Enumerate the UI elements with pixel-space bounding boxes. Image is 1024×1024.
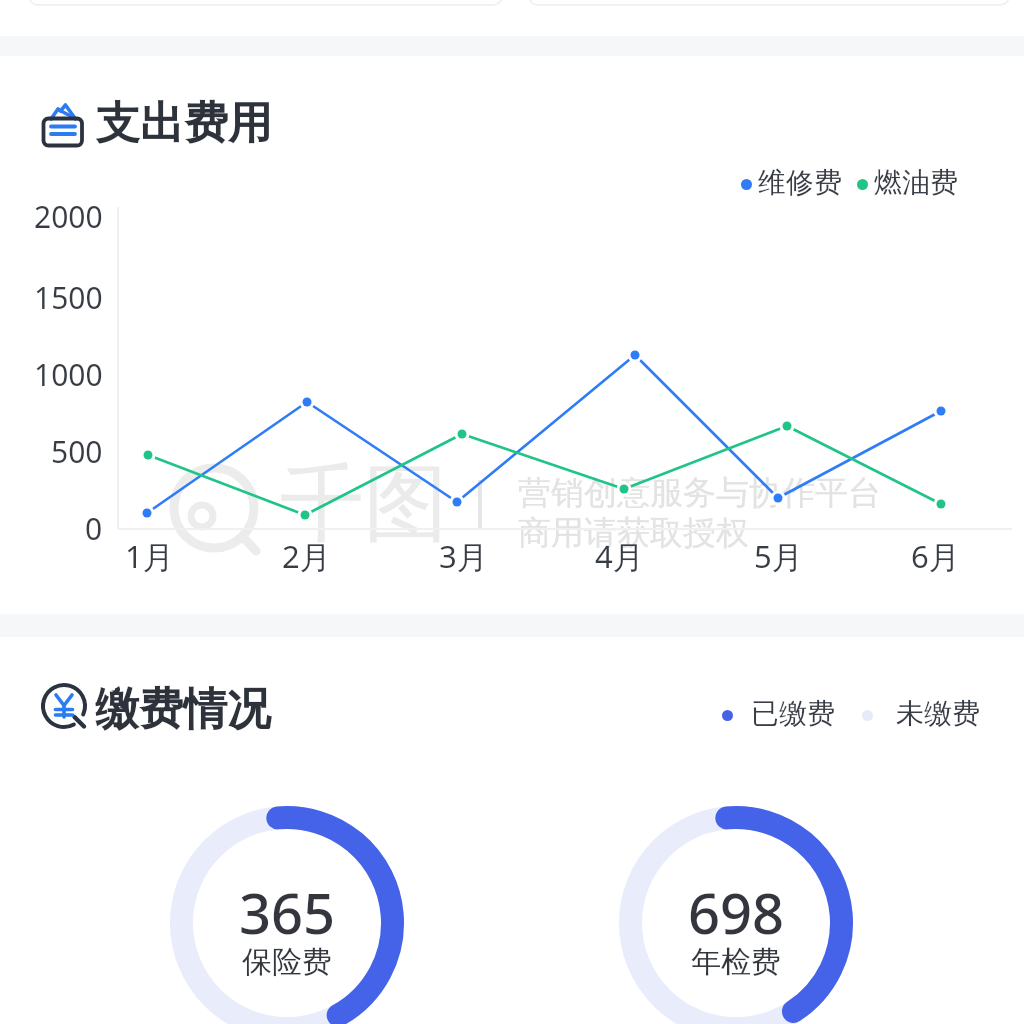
staticText: 6月	[911, 535, 960, 577]
staticText: 5月	[754, 535, 803, 577]
staticText: 未缴费	[896, 696, 980, 731]
staticText: 1月	[125, 535, 174, 577]
staticText: 年检费	[691, 943, 781, 981]
staticText: 支出费用	[96, 96, 272, 151]
staticText: 3月	[439, 535, 488, 577]
staticText: 商用请获取授权	[518, 512, 749, 554]
staticText: 1500	[34, 277, 103, 318]
staticText: 365	[239, 874, 336, 950]
staticText: 千图	[280, 451, 448, 557]
button[interactable]	[716, 700, 986, 732]
staticText: 500	[51, 431, 103, 472]
staticText: 燃油费	[874, 165, 958, 200]
button[interactable]	[167, 803, 407, 1024]
staticText: 2月	[282, 535, 331, 577]
staticText: 保险费	[242, 943, 332, 981]
staticText: 2000	[34, 196, 103, 237]
staticText: 698	[688, 874, 785, 950]
staticText: 已缴费	[751, 696, 835, 731]
button[interactable]	[616, 803, 856, 1024]
staticText: 4月	[595, 535, 644, 577]
staticText: 维修费	[758, 165, 842, 200]
button[interactable]	[735, 168, 965, 200]
staticText: 0	[85, 508, 103, 549]
staticText: 缴费情况	[95, 682, 271, 737]
staticText: 1000	[34, 354, 103, 395]
staticText: 营销创意服务与协作平台	[518, 472, 881, 514]
